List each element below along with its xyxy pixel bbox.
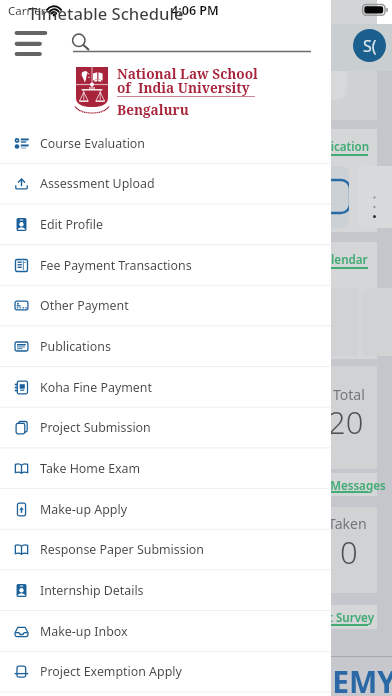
- staticText: Total: [333, 385, 365, 404]
- staticText: ACADEMY: [250, 661, 392, 696]
- button[interactable]: S(: [353, 29, 386, 62]
- button[interactable]: Taken: [6, 507, 377, 593]
- staticText: Carrier: [8, 3, 46, 19]
- button[interactable]: Course Evaluation: [0, 123, 331, 164]
- staticText: Project Submission: [40, 419, 151, 436]
- button[interactable]: Search: [68, 28, 314, 54]
- button[interactable]: Fee Payment Transactions: [0, 245, 331, 286]
- staticText: My Application: [285, 139, 370, 155]
- staticText: Bengaluru: [117, 100, 189, 119]
- button[interactable]: Project Submission: [0, 407, 331, 448]
- staticText: Internship Details: [40, 582, 144, 599]
- staticText: 0: [340, 531, 358, 573]
- staticText: Exit Survey: [312, 610, 375, 626]
- staticText: Publications: [40, 338, 111, 355]
- button[interactable]: Edit Profile: [0, 204, 331, 245]
- staticText: My Messages: [310, 478, 386, 494]
- button[interactable]: Internship Details: [0, 570, 331, 611]
- staticText: Response Paper Submission: [40, 541, 205, 558]
- staticText: Other Payment: [40, 297, 129, 314]
- button[interactable]: Project Exemption Apply: [0, 651, 331, 692]
- staticText: Make-up Apply: [40, 501, 127, 518]
- button[interactable]: Koha Fine Payment: [0, 367, 331, 408]
- button[interactable]: Publications: [0, 326, 331, 367]
- staticText: Take Home Exam: [40, 460, 141, 477]
- button[interactable]: Make-up Apply: [0, 489, 331, 530]
- staticText: Assessment Upload: [40, 175, 155, 192]
- staticText: Timetable Schedule: [28, 2, 184, 25]
- staticText: S(: [363, 35, 377, 57]
- staticText: Taken: [328, 514, 367, 533]
- staticText: Class Calendar: [285, 252, 368, 268]
- button[interactable]: Open navigation menu: [8, 24, 54, 64]
- staticText: Course Evaluation: [40, 135, 146, 152]
- button[interactable]: My Application: [6, 129, 377, 232]
- button[interactable]: Make-up Inbox: [0, 611, 331, 652]
- staticText: Fee Payment Transactions: [40, 257, 192, 274]
- staticText: Edit Profile: [40, 216, 103, 233]
- staticText: 4:06 PM: [171, 2, 219, 19]
- button[interactable]: Total: [6, 366, 377, 469]
- staticText: Project Exemption Apply: [40, 663, 182, 680]
- staticText: Make-up Inbox: [40, 623, 128, 640]
- staticText: of India University: [117, 78, 250, 97]
- button[interactable]: Other Payment: [0, 285, 331, 326]
- button[interactable]: Class Calendar: [6, 242, 377, 359]
- staticText: National Law School: [117, 64, 258, 83]
- button[interactable]: Response Paper Submission: [0, 529, 331, 570]
- staticText: Koha Fine Payment: [40, 379, 152, 396]
- button[interactable]: Assessment Upload: [0, 163, 331, 204]
- button[interactable]: Take Home Exam: [0, 448, 331, 489]
- staticText: 20: [328, 401, 364, 443]
